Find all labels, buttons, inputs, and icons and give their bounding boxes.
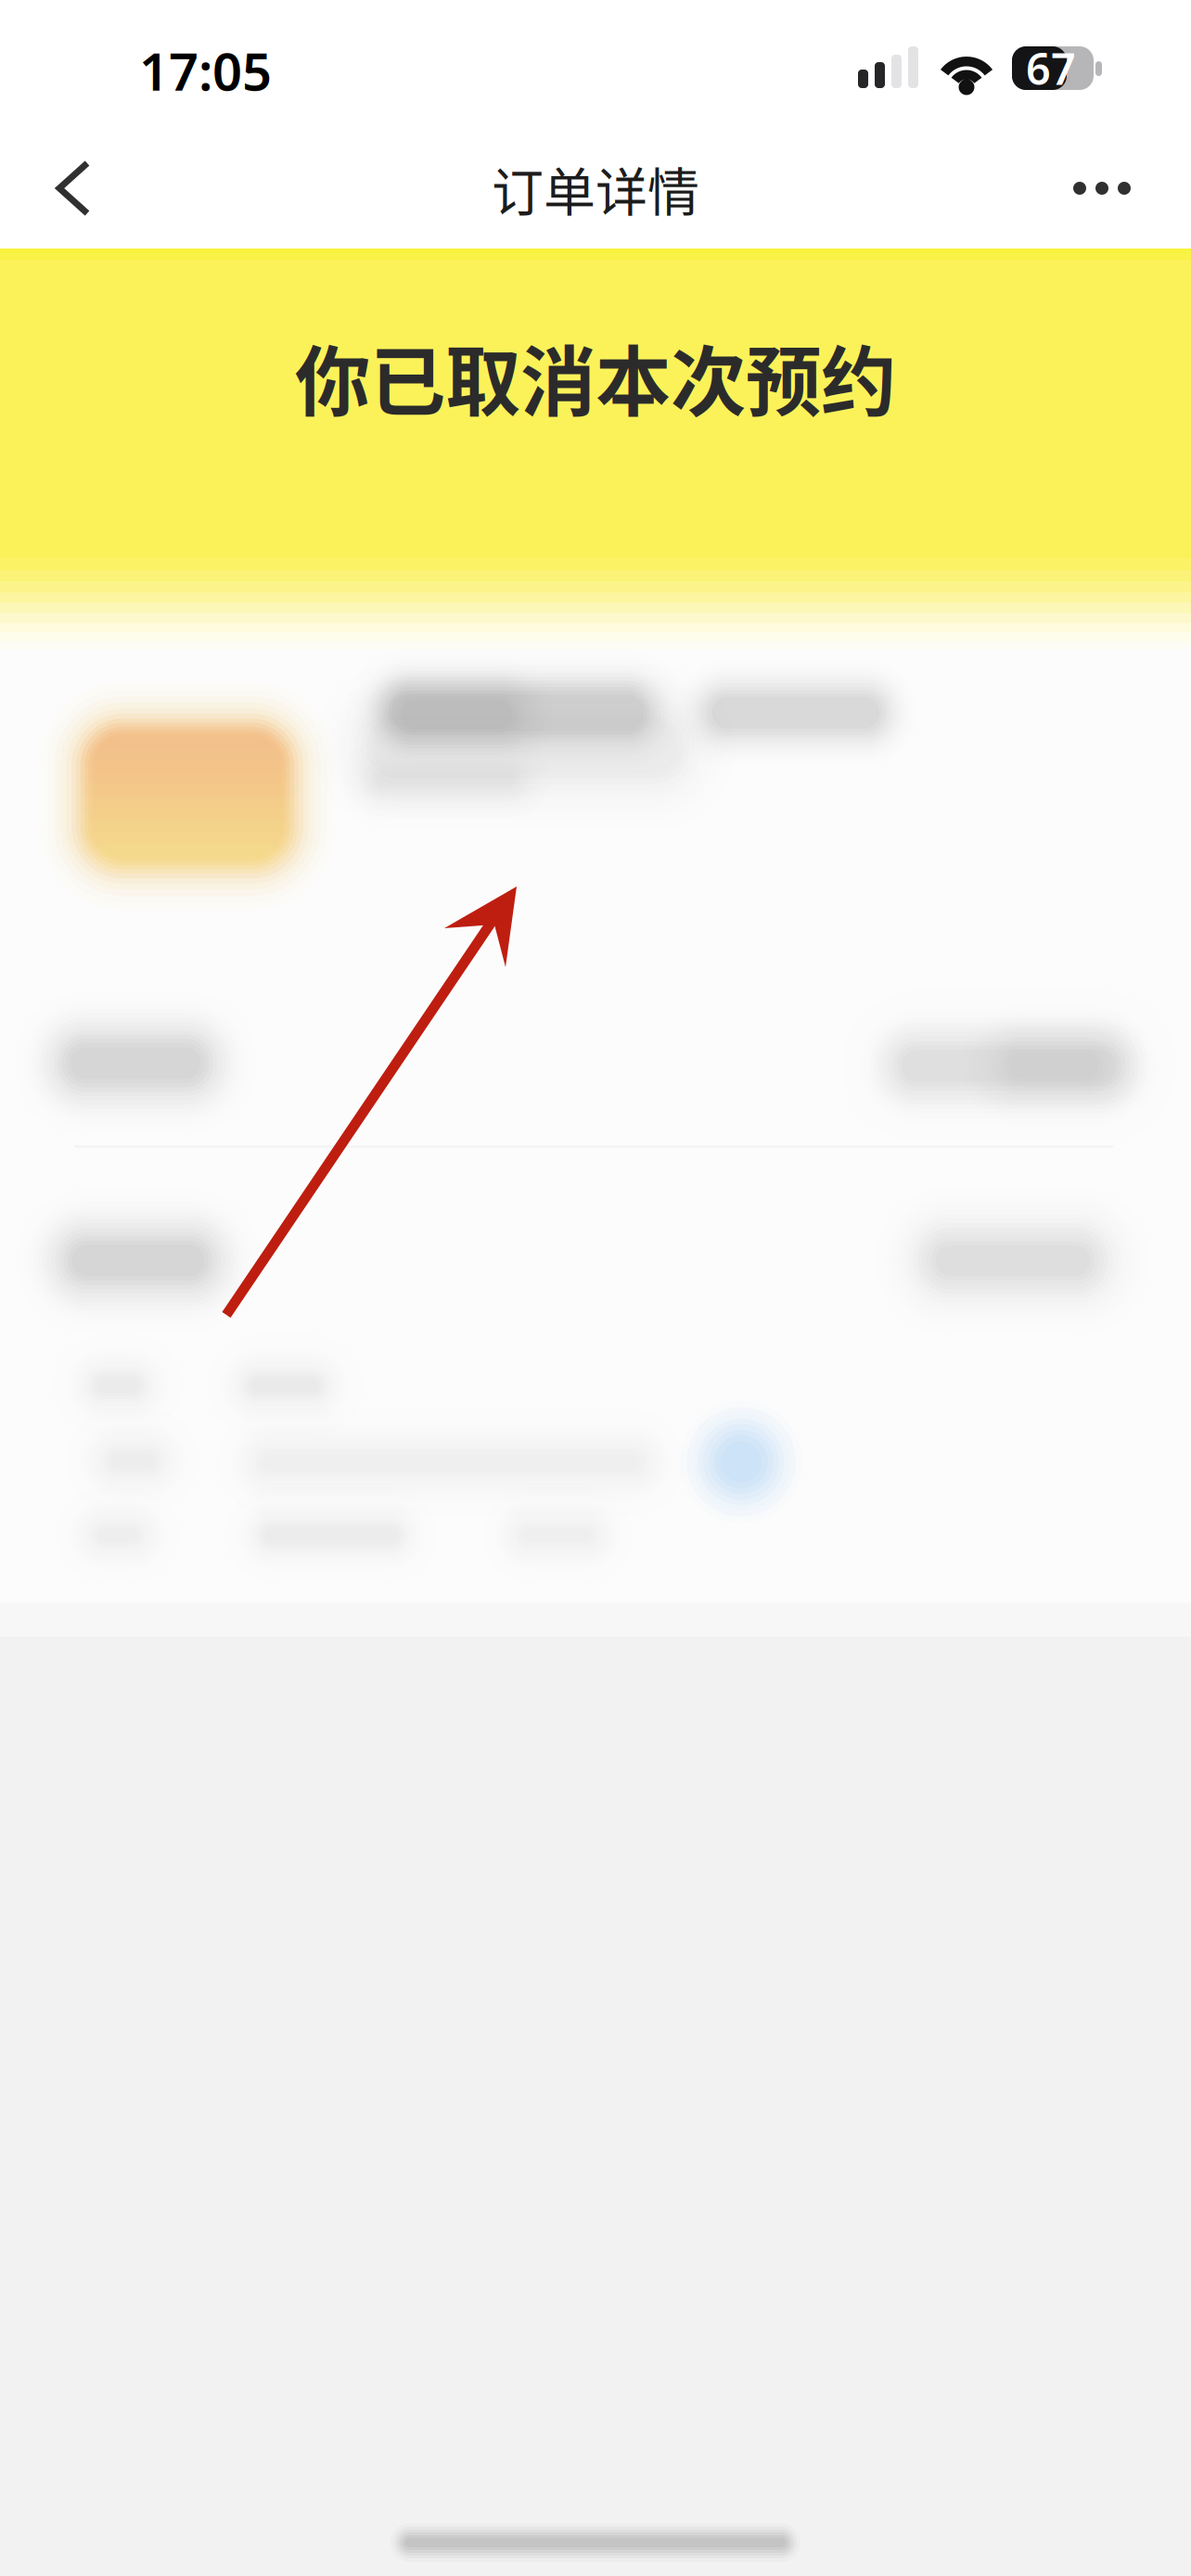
button[interactable]: More options	[1039, 135, 1191, 241]
staticText: 你已取消本次预约	[295, 322, 896, 431]
staticText: 67	[1026, 39, 1076, 97]
button[interactable]: Back	[0, 135, 132, 241]
staticText: 17:05	[139, 36, 272, 105]
staticText: 订单详情	[492, 151, 699, 226]
